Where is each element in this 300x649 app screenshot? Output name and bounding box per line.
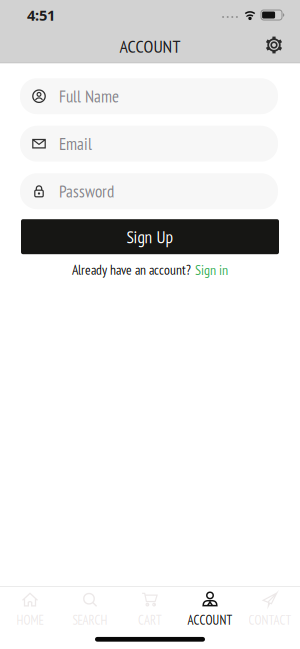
button[interactable]: CART	[120, 591, 180, 628]
staticText: SEARCH	[72, 612, 107, 628]
staticText: 4:51	[27, 5, 55, 25]
button[interactable]: SEARCH	[60, 591, 120, 628]
staticText: Password	[59, 180, 114, 202]
button[interactable]: Password	[20, 173, 278, 209]
staticText: CONTACT	[248, 612, 291, 628]
button[interactable]: ACCOUNT	[180, 591, 240, 628]
button[interactable]: Full Name	[20, 78, 278, 114]
button[interactable]: Sign Up	[21, 219, 279, 254]
staticText: ACCOUNT	[119, 34, 180, 57]
button[interactable]: HOME	[0, 591, 60, 628]
staticText: Sign in	[195, 261, 228, 279]
staticText: Full Name	[59, 85, 119, 107]
staticText: ACCOUNT	[187, 612, 232, 628]
staticText: HOME	[16, 612, 43, 628]
staticText: CART	[138, 612, 162, 628]
button[interactable]: Settings	[263, 34, 285, 56]
button[interactable]: Sign in	[195, 261, 228, 279]
staticText: Sign Up	[126, 225, 173, 248]
staticText: Email	[59, 133, 92, 155]
button[interactable]: CONTACT	[240, 591, 300, 628]
staticText: Already have an account?	[72, 261, 191, 279]
button[interactable]: Email	[20, 126, 278, 162]
